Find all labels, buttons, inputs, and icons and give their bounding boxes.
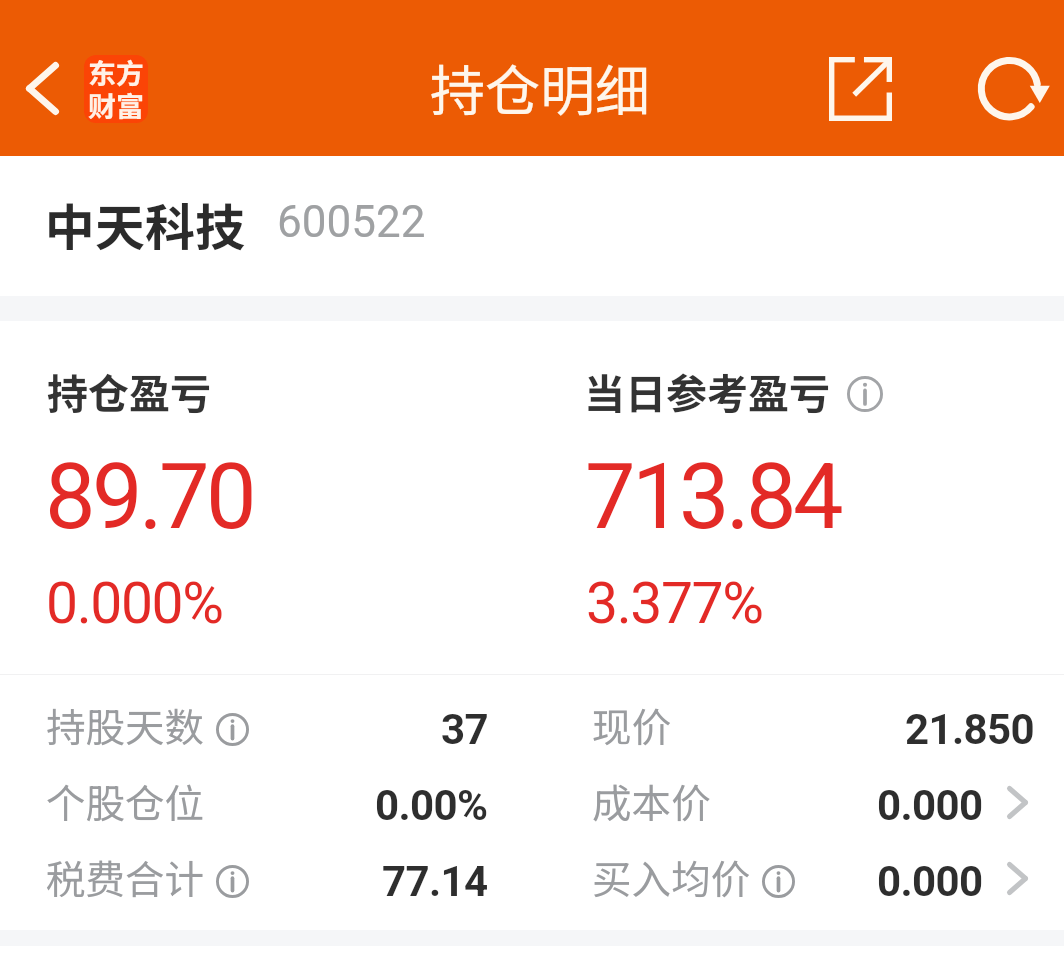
staticText: 中天科技 xyxy=(45,188,245,260)
staticText: 0.000 xyxy=(877,781,983,830)
button[interactable]: 成本价 xyxy=(540,764,1064,840)
button[interactable]: 中天科技 xyxy=(0,156,1064,296)
staticText: 0.000% xyxy=(46,570,223,637)
button[interactable]: East Money xyxy=(84,55,148,123)
button[interactable]: 持股天数 xyxy=(0,688,540,764)
staticText: 东方 xyxy=(88,55,145,93)
button[interactable]: 现价 xyxy=(540,688,1064,764)
staticText: 财富 xyxy=(88,85,145,123)
button[interactable]: 个股仓位 xyxy=(0,764,540,840)
button[interactable]: Back xyxy=(2,44,80,112)
staticText: 持仓明细 xyxy=(430,47,651,127)
staticText: 现价 xyxy=(592,696,671,753)
staticText: 税费合计 xyxy=(46,848,204,905)
staticText: 买入均价 xyxy=(592,848,750,905)
button[interactable]: 税费合计 xyxy=(0,840,540,916)
staticText: 600522 xyxy=(277,196,426,248)
staticText: 3.377% xyxy=(586,570,763,637)
staticText: 持股天数 xyxy=(46,696,204,753)
button[interactable]: 买入均价 xyxy=(540,840,1064,916)
staticText: 0.00% xyxy=(375,781,488,830)
staticText: 713.84 xyxy=(585,445,841,550)
staticText: 37 xyxy=(441,705,488,754)
staticText: 成本价 xyxy=(592,772,711,829)
staticText: 持仓盈亏 xyxy=(47,361,211,420)
button[interactable]: Refresh xyxy=(962,41,1058,137)
staticText: 89.70 xyxy=(45,445,254,550)
staticText: 个股仓位 xyxy=(46,772,204,829)
staticText: 0.000 xyxy=(877,857,983,906)
button[interactable]: Share xyxy=(812,41,906,135)
staticText: 当日参考盈亏 xyxy=(584,361,830,420)
staticText: 21.850 xyxy=(905,705,1035,754)
staticText: 77.14 xyxy=(382,857,488,906)
